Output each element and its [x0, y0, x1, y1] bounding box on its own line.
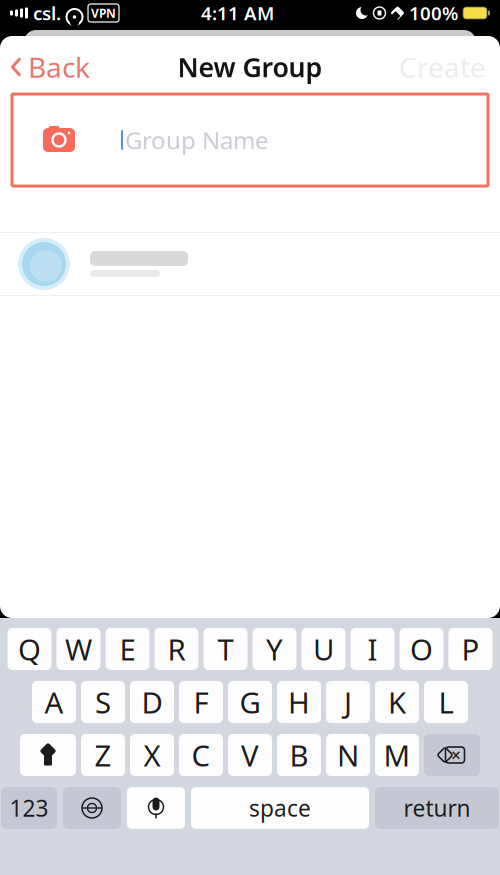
staticText: P [461, 629, 479, 668]
staticText: E [119, 629, 135, 668]
button[interactable]: Shift [20, 734, 76, 776]
staticText: 123 [9, 793, 48, 823]
button[interactable]: P [448, 628, 492, 670]
staticText: U [313, 629, 334, 668]
button[interactable]: Next keyboard [63, 787, 121, 829]
button[interactable]: Create [399, 40, 500, 94]
button[interactable]: Y [252, 628, 296, 670]
staticText: A [44, 682, 63, 721]
button[interactable]: H [277, 681, 321, 723]
button[interactable]: space [191, 787, 369, 829]
staticText: F [193, 682, 208, 721]
staticText: Q [18, 629, 41, 668]
staticText: space [249, 793, 311, 823]
staticText: V [241, 735, 259, 774]
button[interactable]: G [228, 681, 272, 723]
staticText: H [288, 682, 310, 721]
button[interactable]: I [350, 628, 394, 670]
staticText: VPN [91, 5, 116, 21]
button[interactable]: Delete [424, 734, 480, 776]
staticText: Y [266, 629, 283, 668]
staticText: return [403, 793, 470, 823]
button[interactable] [0, 233, 500, 295]
staticText: I [367, 629, 377, 668]
staticText: W [65, 629, 92, 668]
staticText: × [451, 743, 461, 766]
staticText: X [143, 735, 160, 774]
button[interactable]: M [375, 734, 419, 776]
staticText: J [344, 682, 352, 721]
button[interactable]: J [326, 681, 370, 723]
staticText: Create [399, 48, 486, 86]
button[interactable]: S [81, 681, 125, 723]
staticText: csl. [33, 1, 61, 25]
staticText: Group Name [125, 124, 269, 156]
button[interactable]: Dictation [127, 787, 185, 829]
button[interactable]: X [130, 734, 174, 776]
staticText: T [217, 629, 233, 668]
button[interactable]: O [399, 628, 443, 670]
staticText: S [95, 682, 111, 721]
button[interactable]: C [179, 734, 223, 776]
staticText: R [167, 629, 185, 668]
button[interactable]: F [179, 681, 223, 723]
button[interactable]: 123 [1, 787, 57, 829]
button[interactable]: U [301, 628, 345, 670]
button[interactable]: A [32, 681, 76, 723]
button[interactable]: L [424, 681, 468, 723]
staticText: D [141, 682, 162, 721]
button[interactable]: K [375, 681, 419, 723]
button[interactable]: B [277, 734, 321, 776]
staticText: Back [28, 48, 90, 86]
button[interactable]: N [326, 734, 370, 776]
button[interactable]: R [154, 628, 198, 670]
staticText: New Group [177, 49, 322, 85]
staticText: G [239, 682, 260, 721]
staticText: C [191, 735, 210, 774]
button[interactable]: return [375, 787, 499, 829]
button[interactable]: Q [7, 628, 51, 670]
staticText: L [438, 682, 453, 721]
staticText: N [337, 735, 359, 774]
button[interactable]: E [105, 628, 149, 670]
button[interactable]: V [228, 734, 272, 776]
staticText: O [410, 629, 433, 668]
staticText: M [383, 735, 410, 774]
button[interactable]: D [130, 681, 174, 723]
button[interactable]: W [56, 628, 100, 670]
staticText: Z [94, 735, 111, 774]
button[interactable]: T [203, 628, 247, 670]
button[interactable]: Back [0, 40, 90, 94]
staticText: 100% [409, 1, 458, 25]
staticText: B [289, 735, 308, 774]
staticText: 4:11 AM [201, 1, 274, 25]
staticText: K [388, 682, 406, 721]
button[interactable]: Z [81, 734, 125, 776]
